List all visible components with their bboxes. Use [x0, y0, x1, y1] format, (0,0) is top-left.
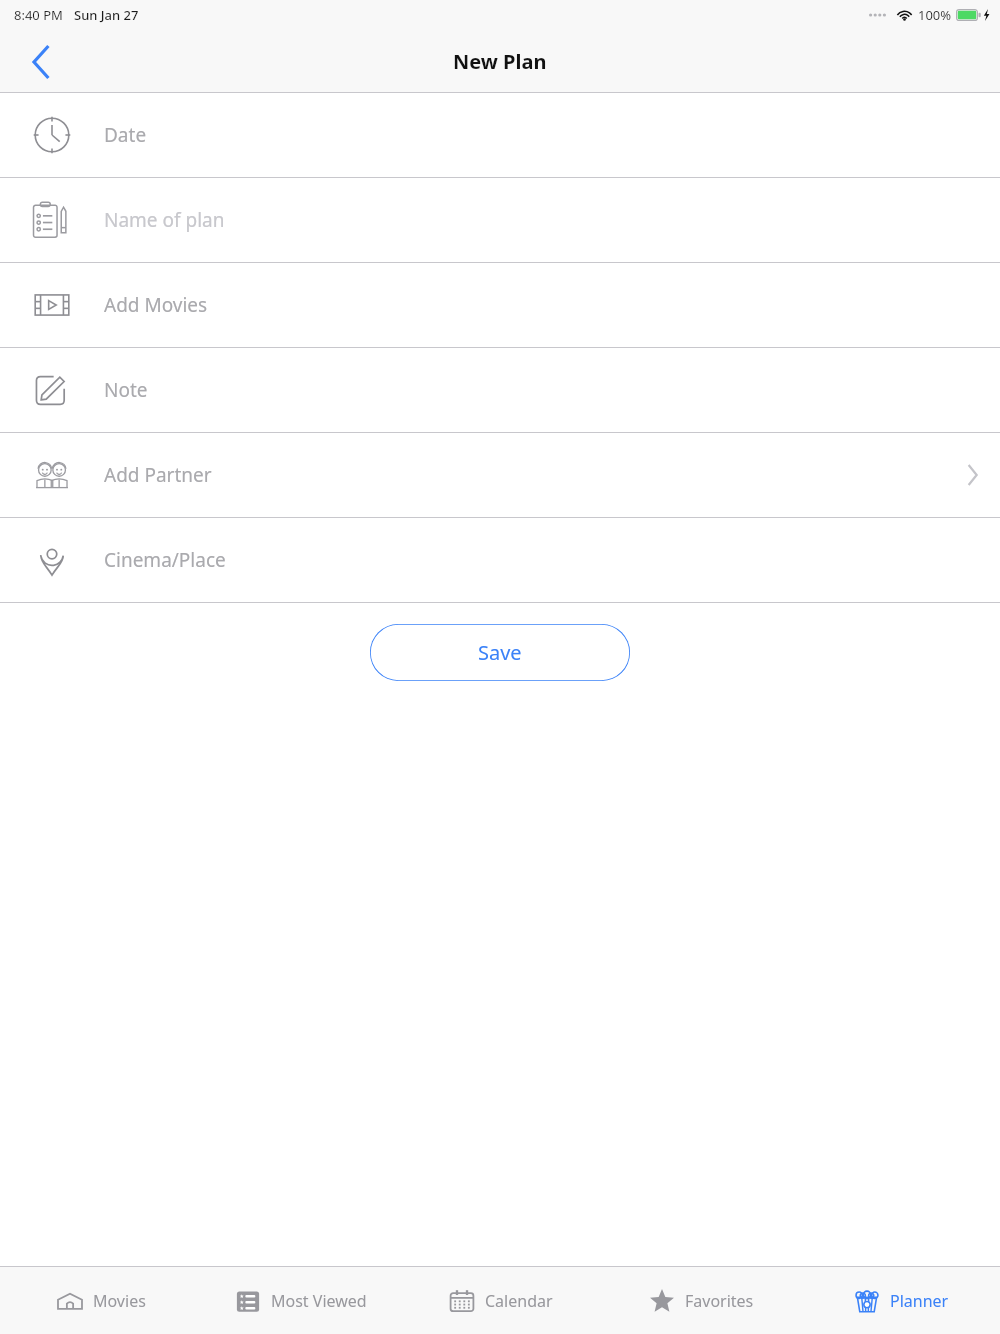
button[interactable]: Most Viewed	[200, 1267, 400, 1334]
button[interactable]: Movies	[0, 1267, 200, 1334]
staticText: Sun Jan 27	[74, 6, 139, 24]
staticText: Add Movies	[104, 292, 208, 318]
staticText: Cinema/Place	[104, 547, 226, 573]
button[interactable]: Back	[14, 34, 70, 90]
button[interactable]: Date	[0, 93, 1000, 177]
button[interactable]: Add Partner	[0, 433, 1000, 517]
button[interactable]: Cinema/Place	[0, 518, 1000, 602]
staticText: Note	[104, 377, 148, 403]
staticText: New Plan	[453, 48, 547, 75]
button[interactable]: Planner	[800, 1267, 1000, 1334]
button[interactable]: Name of plan	[0, 178, 1000, 262]
staticText: Movies	[93, 1290, 146, 1312]
staticText: Planner	[890, 1290, 949, 1312]
staticText: Add Partner	[104, 462, 212, 488]
button[interactable]: Note	[0, 348, 1000, 432]
staticText: Save	[478, 639, 522, 666]
button[interactable]: Favorites	[600, 1267, 800, 1334]
staticText: Favorites	[685, 1290, 754, 1312]
staticText: Date	[104, 122, 147, 148]
staticText: 8:40 PM	[14, 6, 63, 24]
staticText: Calendar	[485, 1290, 553, 1312]
button[interactable]: Save	[370, 624, 630, 681]
button[interactable]: Calendar	[400, 1267, 600, 1334]
button[interactable]: Add Movies	[0, 263, 1000, 347]
staticText: Name of plan	[104, 207, 225, 233]
staticText: 100%	[918, 6, 952, 24]
staticText: Most Viewed	[271, 1290, 367, 1312]
